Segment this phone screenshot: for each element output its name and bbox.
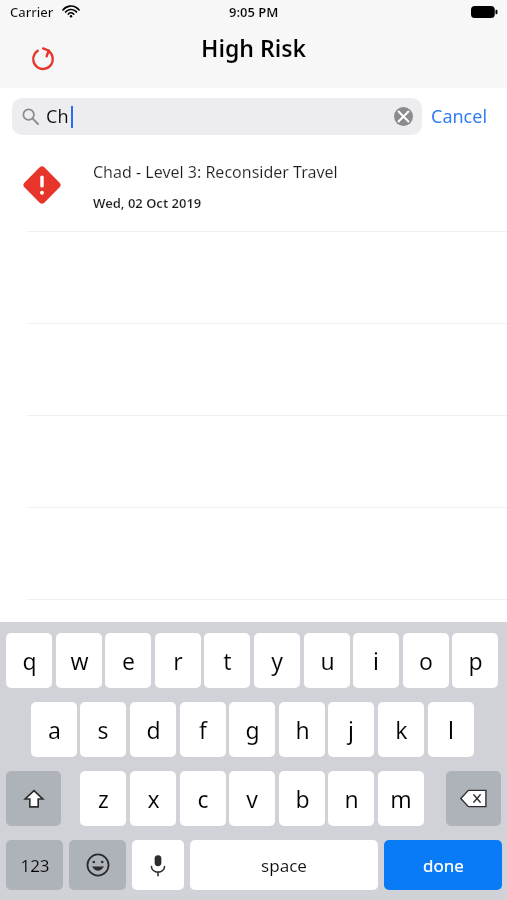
button[interactable]: n	[328, 771, 374, 826]
staticText: Carrier	[10, 3, 54, 21]
button[interactable]: g	[229, 702, 275, 757]
button[interactable]: k	[378, 702, 424, 757]
button[interactable]: o	[403, 633, 449, 688]
staticText: h	[295, 714, 310, 745]
staticText: v	[246, 783, 258, 814]
button[interactable]: l	[428, 702, 474, 757]
staticText: Chad - Level 3: Reconsider Travel	[93, 161, 338, 183]
button[interactable]: e	[105, 633, 151, 688]
button[interactable]: 123	[6, 840, 63, 890]
staticText: p	[468, 645, 483, 676]
button[interactable]: x	[130, 771, 176, 826]
staticText: space	[261, 854, 307, 877]
button[interactable]: Shift	[6, 771, 61, 826]
button[interactable]: c	[180, 771, 226, 826]
button[interactable]: q	[6, 633, 52, 688]
button[interactable]: y	[254, 633, 300, 688]
staticText: m	[390, 783, 412, 814]
staticText: u	[320, 645, 335, 676]
staticText: f	[199, 714, 207, 745]
staticText: z	[98, 783, 109, 814]
button[interactable]: j	[328, 702, 374, 757]
button[interactable]: f	[180, 702, 226, 757]
staticText: High Risk	[201, 32, 307, 63]
button[interactable]: r	[155, 633, 201, 688]
staticText: done	[423, 854, 464, 877]
staticText: Cancel	[431, 104, 488, 129]
staticText: r	[173, 645, 183, 676]
staticText: Wed, 02 Oct 2019	[93, 194, 202, 212]
staticText: q	[22, 645, 37, 676]
button[interactable]: Dictation	[132, 840, 184, 890]
button[interactable]: d	[130, 702, 176, 757]
staticText: y	[271, 645, 283, 676]
button[interactable]: Backspace	[446, 771, 501, 826]
button[interactable]: Clear text	[394, 107, 413, 126]
staticText: b	[295, 783, 310, 814]
staticText: a	[48, 714, 61, 745]
button[interactable]: p	[452, 633, 498, 688]
staticText: 9:05 PM	[229, 3, 279, 21]
staticText: e	[122, 645, 135, 676]
button[interactable]: w	[56, 633, 102, 688]
button[interactable]: b	[279, 771, 325, 826]
staticText: w	[70, 645, 89, 676]
staticText: 123	[20, 854, 50, 877]
button[interactable]: u	[304, 633, 350, 688]
staticText: o	[419, 645, 433, 676]
staticText: s	[97, 714, 109, 745]
staticText: l	[448, 714, 454, 745]
button[interactable]: m	[378, 771, 424, 826]
staticText: t	[223, 645, 232, 676]
button[interactable]: s	[80, 702, 126, 757]
button[interactable]: z	[80, 771, 126, 826]
staticText: n	[344, 783, 359, 814]
button[interactable]: space	[190, 840, 378, 890]
button[interactable]: i	[353, 633, 399, 688]
staticText: c	[197, 783, 209, 814]
staticText: x	[147, 783, 160, 814]
button[interactable]: Cancel	[431, 95, 488, 137]
button[interactable]: a	[31, 702, 77, 757]
button[interactable]: v	[229, 771, 275, 826]
button[interactable]: h	[279, 702, 325, 757]
button[interactable]: t	[204, 633, 250, 688]
button[interactable]: Refresh	[22, 37, 64, 79]
staticText: d	[146, 714, 161, 745]
staticText: j	[348, 714, 354, 745]
button[interactable]: Ch	[12, 98, 422, 135]
staticText: Ch	[46, 104, 69, 129]
staticText: k	[395, 714, 408, 745]
button[interactable]: Emoji keyboard	[69, 840, 126, 890]
staticText: i	[373, 645, 379, 676]
button[interactable]: done	[384, 840, 502, 890]
staticText: g	[245, 714, 260, 745]
button[interactable]: Chad - Level 3: Reconsider Travel	[0, 144, 507, 232]
